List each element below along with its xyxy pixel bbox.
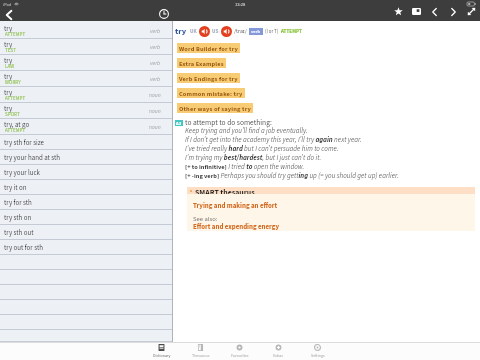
button[interactable]: Previous [429,6,440,17]
button[interactable]: Extras [259,342,298,360]
staticText: I’m trying my best/hardest, but I just c… [185,153,322,162]
button[interactable]: try sth on [0,210,172,225]
button[interactable]: Other ways of saying try [177,103,253,113]
staticText: noun [149,123,161,131]
staticText: Favourites [231,353,249,359]
staticText: iPad [3,1,12,8]
staticText: [+ to infinitive] I tried to open the wi… [185,162,305,171]
staticText: verb [150,75,161,83]
staticText: Verb Endings for try [179,74,238,83]
button[interactable]: Back [1,7,16,22]
staticText: try [175,25,187,37]
staticText: LAW [5,63,15,70]
staticText: Other ways of saying try [179,104,251,113]
staticText: Word Builder for try [179,44,238,53]
staticText: /traɪ/ [234,27,247,35]
staticText: Extra Examples [179,59,224,68]
staticText: try out for sth [4,243,43,253]
staticText: try [4,40,13,50]
button[interactable]: Library [411,6,422,17]
button[interactable]: Play pronunciation [199,26,210,37]
staticText: ATTEMPT [281,28,303,35]
button[interactable]: Dictionary [142,342,181,360]
staticText: try [4,72,13,82]
button[interactable]: History [157,7,171,21]
button[interactable]: try [0,87,172,103]
button[interactable]: Play pronunciation [221,26,232,37]
staticText: Keep trying and you’ll find a job eventu… [185,126,308,135]
button[interactable]: try your luck [0,165,172,180]
button[interactable]: try [0,55,172,71]
staticText: try sth out [4,228,34,238]
staticText: verb [150,27,161,35]
button[interactable]: try sth for size [0,135,172,150]
staticText: try for sth [4,198,32,208]
staticText: try sth on [4,213,32,223]
button[interactable]: Effort and expending energy [193,222,280,232]
button[interactable]: try [0,39,172,55]
button[interactable]: SMART thesaurus [190,187,255,194]
staticText: try it on [4,183,27,193]
staticText: noun [149,107,161,115]
button[interactable]: Common mistake: try [177,88,245,98]
button[interactable]: Full screen [466,6,477,17]
staticText: noun [149,91,161,99]
button[interactable]: try [0,23,172,39]
button[interactable]: Verb Endings for try [177,73,240,83]
button[interactable]: try [0,71,172,87]
staticText: SPORT [5,111,20,118]
button[interactable]: Trying and making an effort [193,201,278,211]
staticText: try [4,104,13,114]
button[interactable]: Thesaurus [181,342,220,360]
staticText: try your hand at sth [4,153,61,163]
button[interactable]: Favourite [393,6,404,17]
staticText: ATTEMPT [5,95,26,102]
button[interactable]: try your hand at sth [0,150,172,165]
button[interactable]: Settings [298,342,337,360]
button[interactable]: try out for sth [0,240,172,255]
staticText: to attempt to do something: [185,117,272,128]
staticText: Thesaurus [192,353,210,359]
staticText: (I or T) [265,28,279,35]
staticText: ATTEMPT [5,127,26,134]
staticText: See also: [193,214,218,223]
staticText: try [4,24,13,34]
staticText: try your luck [4,168,40,178]
button[interactable]: try for sth [0,195,172,210]
staticText: 13:28 [235,1,246,8]
staticText: If I don’t get into the academy this yea… [185,135,362,144]
staticText: TEST [5,47,16,54]
button[interactable]: Favourites [220,342,259,360]
staticText: Settings [311,353,325,359]
staticText: WORRY [5,79,21,86]
staticText: try [4,88,13,98]
staticText: US [212,28,219,35]
staticText: try, at go [4,120,30,130]
staticText: A2 [176,120,182,126]
staticText: Dictionary [153,353,171,359]
button[interactable]: try it on [0,180,172,195]
staticText: I’ve tried really hard but I can’t persu… [185,144,339,153]
staticText: ATTEMPT [5,31,26,38]
staticText: verb [150,59,161,67]
button[interactable]: try [0,103,172,119]
staticText: try [4,56,13,66]
button[interactable]: Word Builder for try [177,43,240,53]
staticText: SMART thesaurus [195,187,255,194]
staticText: verb [150,43,161,51]
staticText: Common mistake: try [179,89,243,98]
staticText: verb [251,28,261,35]
button[interactable]: Next [448,6,459,17]
staticText: [+ -ing verb] Perhaps you should try get… [185,171,399,180]
staticText: UK [190,28,197,35]
staticText: Extras [273,353,284,359]
button[interactable]: Extra Examples [177,58,226,68]
button[interactable]: try, at go [0,119,172,135]
button[interactable]: try sth out [0,225,172,240]
staticText: try sth for size [4,138,45,148]
